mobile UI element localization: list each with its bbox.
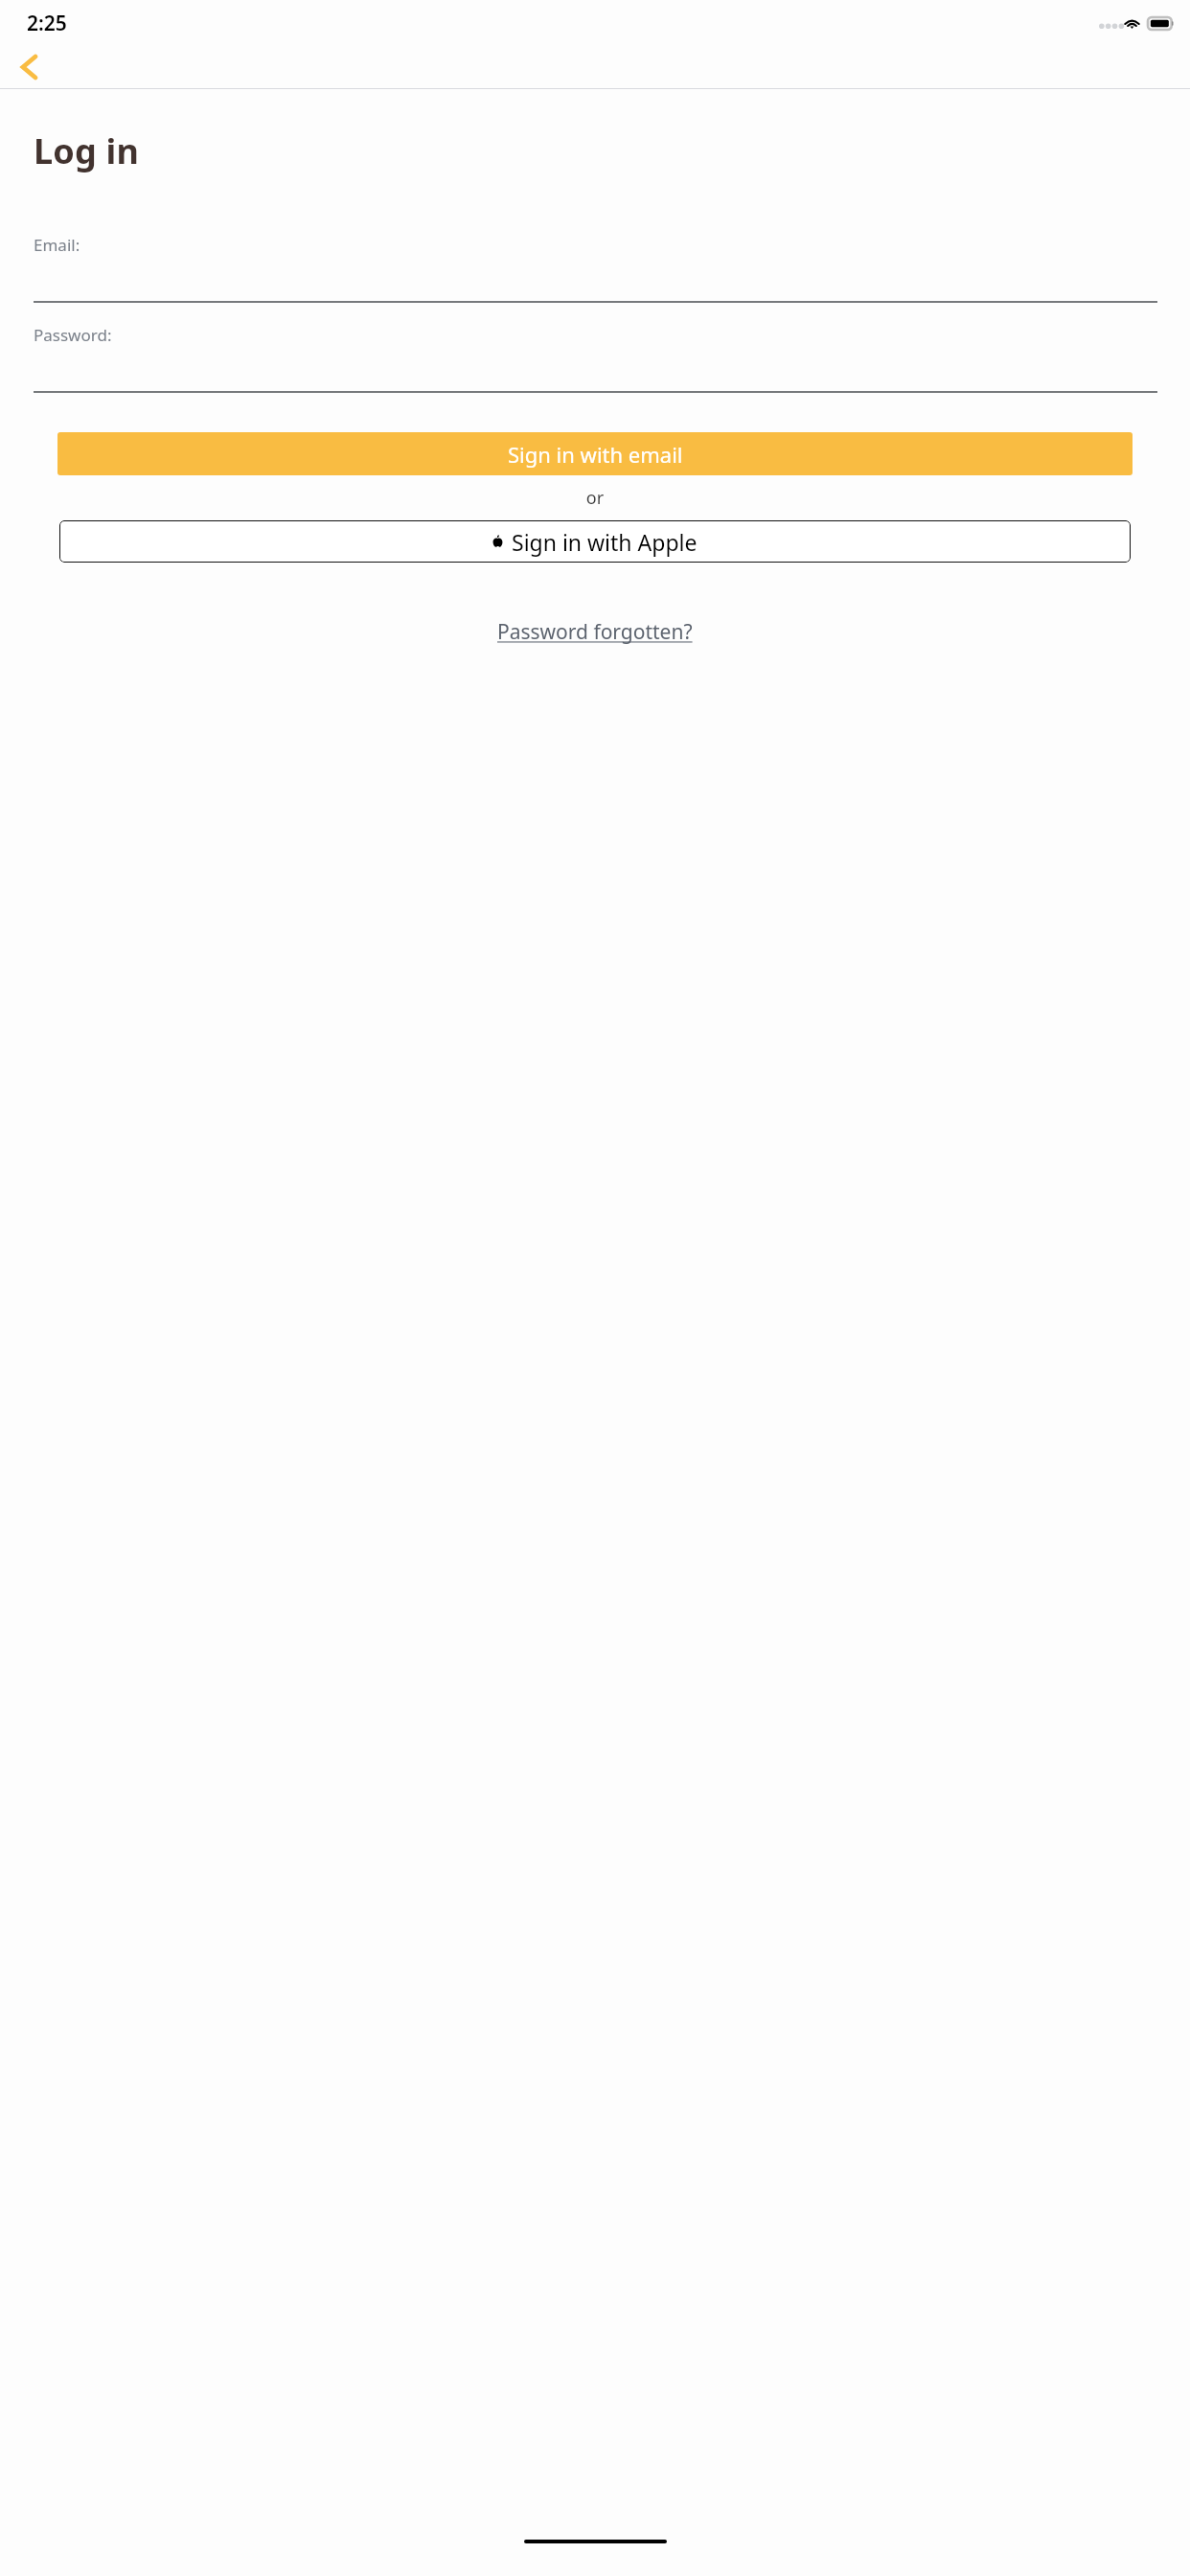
staticText: Password forgotten? <box>497 618 693 646</box>
button[interactable]: Back <box>8 46 50 88</box>
button[interactable]: Password forgotten? <box>490 612 700 652</box>
staticText: Sign in with Apple <box>512 527 698 557</box>
staticText: Log in <box>34 127 140 174</box>
staticText: or <box>0 486 1190 510</box>
button[interactable]: Sign in with Apple <box>59 520 1131 563</box>
staticText: 2:25 <box>27 10 67 37</box>
staticText: Password: <box>34 324 112 346</box>
staticText: Sign in with email <box>508 440 683 469</box>
button[interactable]: Sign in with email <box>57 432 1133 475</box>
staticText: Email: <box>34 234 80 256</box>
